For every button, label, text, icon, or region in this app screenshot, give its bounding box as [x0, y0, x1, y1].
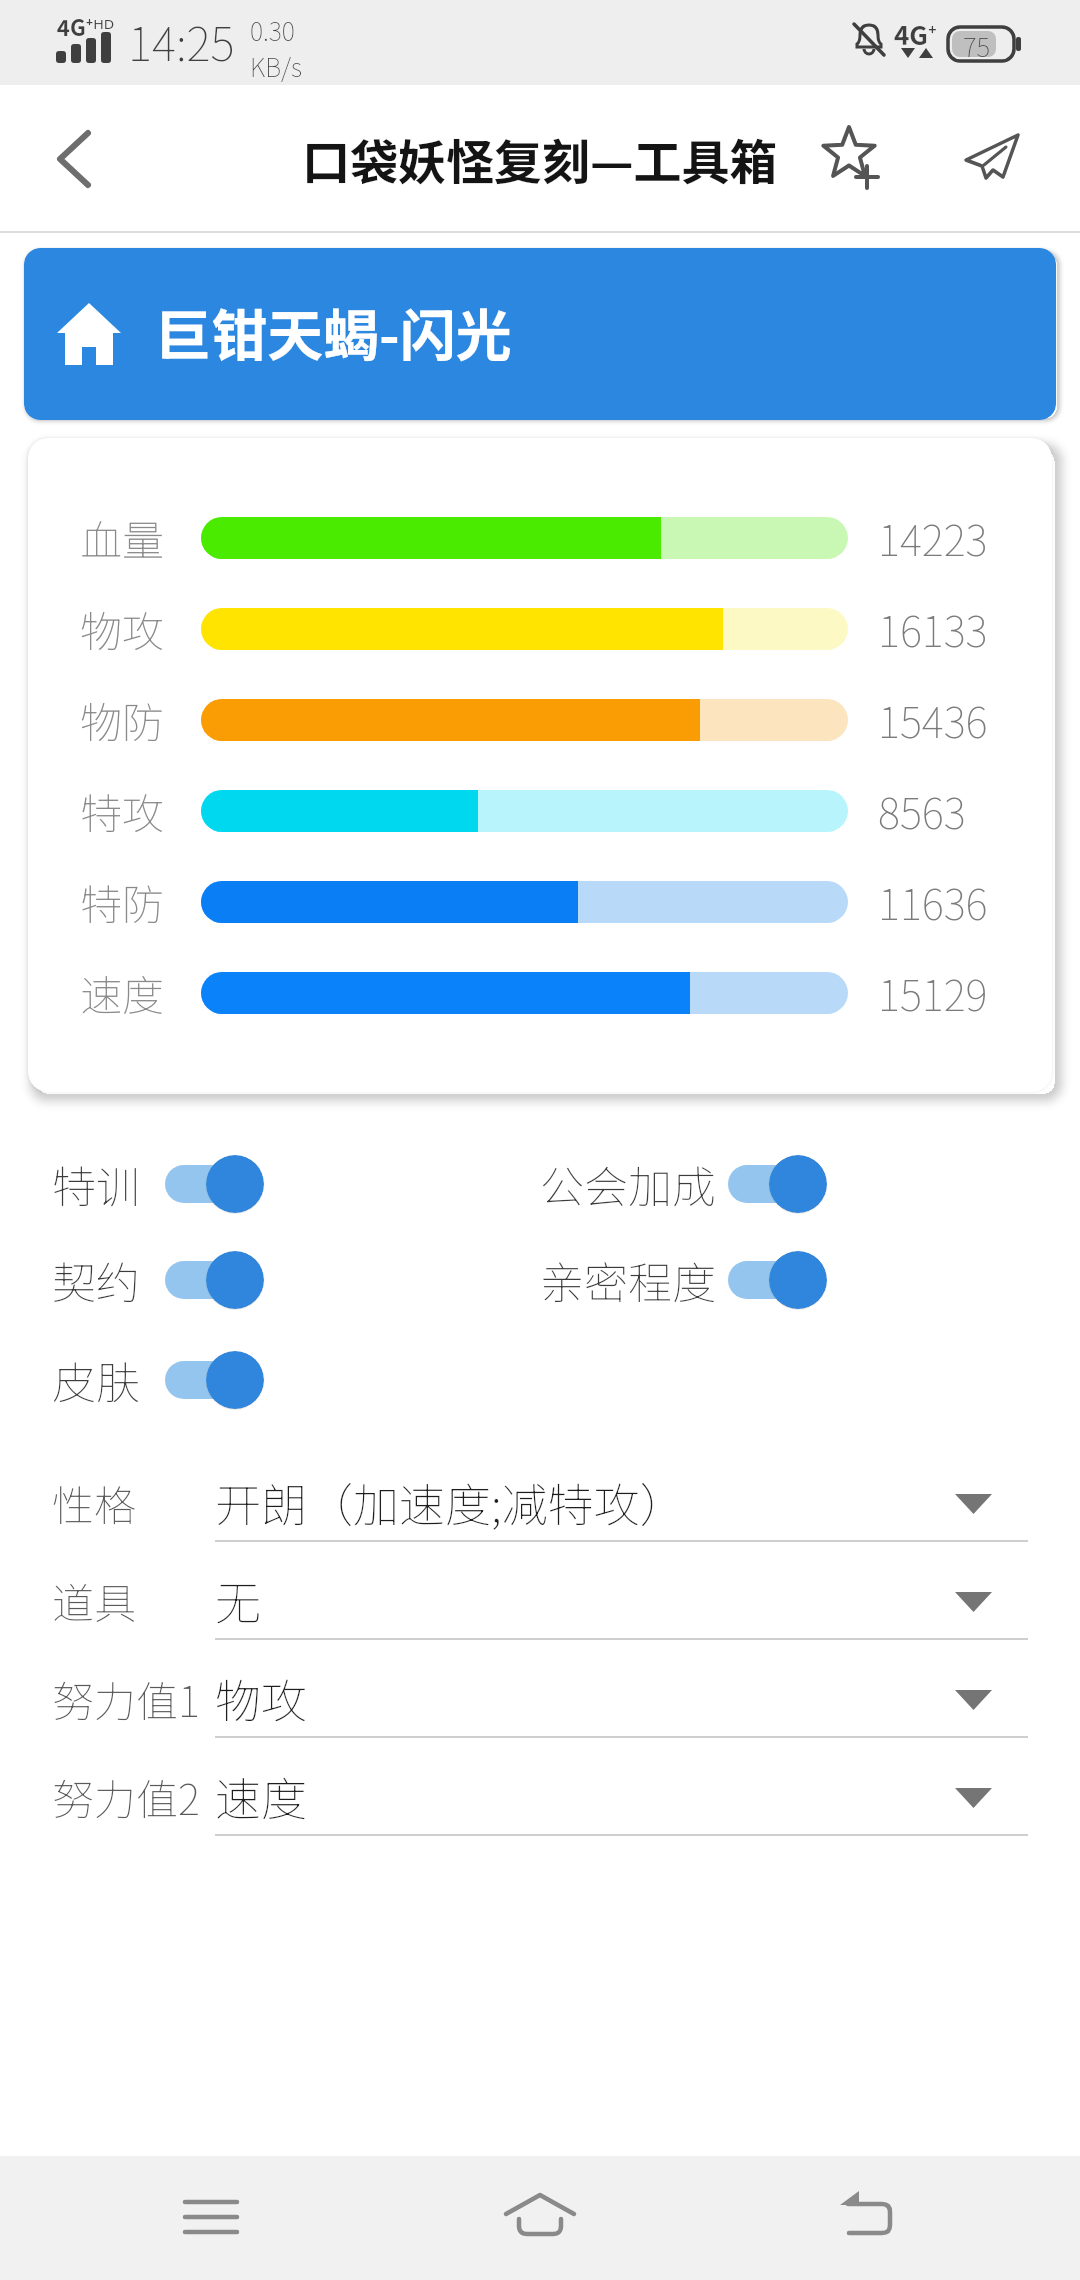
- staticText: 14223: [878, 507, 988, 568]
- staticText: 14:25: [128, 8, 235, 75]
- staticText: 公会加成: [540, 1152, 716, 1216]
- staticText: 努力值2: [52, 1766, 200, 1827]
- staticText: 特防: [80, 871, 165, 932]
- staticText: 特攻: [80, 780, 165, 841]
- staticText: 75: [963, 27, 991, 65]
- staticText: 努力值1: [52, 1668, 200, 1729]
- staticText: 速度: [80, 962, 165, 1023]
- staticText: 道具: [52, 1570, 137, 1631]
- staticText: 皮肤: [52, 1348, 140, 1412]
- staticText: 物防: [80, 689, 165, 750]
- staticText: 4G⁺: [894, 15, 937, 53]
- staticText: 4G⁺ᴴᴰ: [57, 10, 115, 42]
- staticText: 15129: [878, 962, 988, 1023]
- staticText: 血量: [80, 507, 165, 568]
- staticText: 口袋妖怪复刻—工具箱: [302, 124, 778, 194]
- staticText: 巨钳天蝎-闪光: [155, 291, 512, 372]
- staticText: 无: [215, 1567, 261, 1634]
- staticText: 性格: [52, 1472, 137, 1533]
- staticText: KB/s: [250, 48, 302, 84]
- staticText: 16133: [878, 598, 988, 659]
- staticText: 契约: [52, 1248, 140, 1312]
- staticText: 物攻: [215, 1665, 307, 1732]
- staticText: 8563: [878, 780, 966, 841]
- staticText: 物攻: [80, 598, 165, 659]
- staticText: 11636: [878, 871, 988, 932]
- staticText: 0.30: [250, 12, 295, 48]
- staticText: 特训: [52, 1152, 140, 1216]
- staticText: 15436: [878, 689, 988, 750]
- staticText: 亲密程度: [540, 1248, 716, 1312]
- staticText: 开朗（加速度;减特攻）: [215, 1469, 686, 1536]
- staticText: 速度: [215, 1763, 307, 1830]
